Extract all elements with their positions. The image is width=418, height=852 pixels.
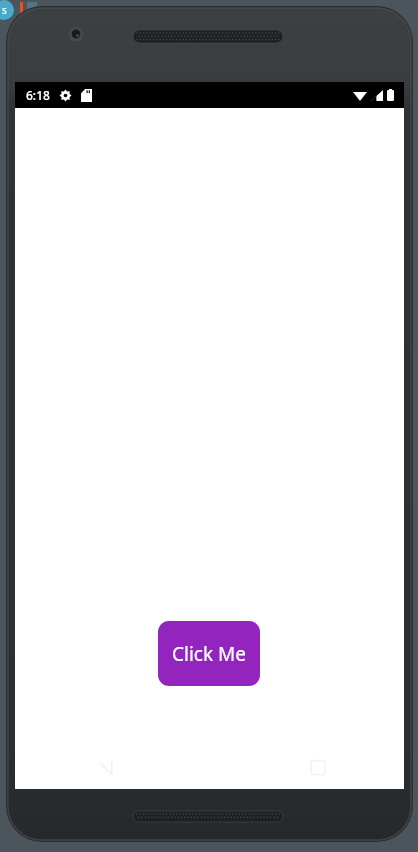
staticText: 6:18 xyxy=(26,87,50,103)
button[interactable]: Recent apps xyxy=(305,755,333,783)
staticText: Click Me xyxy=(172,641,246,667)
button[interactable]: Click Me xyxy=(158,621,260,686)
staticText: s xyxy=(2,3,7,17)
